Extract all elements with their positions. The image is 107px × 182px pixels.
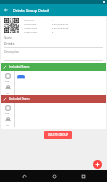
staticText: 0 [52,31,54,34]
button[interactable]: Cat [1,85,14,94]
staticText: Name [4,36,12,40]
staticText: Cat [6,92,9,94]
button[interactable]: Code [1,73,14,82]
staticText: 1 [52,19,54,22]
button[interactable]: Back [18,170,30,182]
staticText: Coke [18,76,24,79]
staticText: Usage Count [24,31,38,34]
button[interactable]: DELETE GROUP [44,131,72,139]
button[interactable]: Coke [17,75,25,79]
staticText: DELETE GROUP [48,133,69,137]
staticText: Group No [24,19,35,22]
staticText: 3-07-2018 01:48 [52,27,69,30]
staticText: 3-07-2018 01:47 [52,23,69,26]
button[interactable]: Cat [1,117,14,126]
button[interactable]: Included Items [1,63,106,71]
staticText: Update Date [24,27,37,30]
staticText: Excluded Items [9,97,30,101]
button[interactable]: Recents [77,170,89,182]
button[interactable]: Back [0,4,12,16]
button[interactable]: Add [93,160,102,169]
staticText: Create Date [24,23,37,26]
button[interactable]: Code [1,105,14,114]
button[interactable]: Home [48,170,60,182]
staticText: Drinks Group Detail [13,8,49,13]
staticText: Description [4,50,20,54]
staticText: Included Items [9,65,30,69]
staticText: Drinks [4,41,15,46]
staticText: Cat [6,124,9,126]
button[interactable]: Excluded Items [1,95,106,103]
staticText: Code [5,112,10,114]
staticText: Code [5,80,10,82]
